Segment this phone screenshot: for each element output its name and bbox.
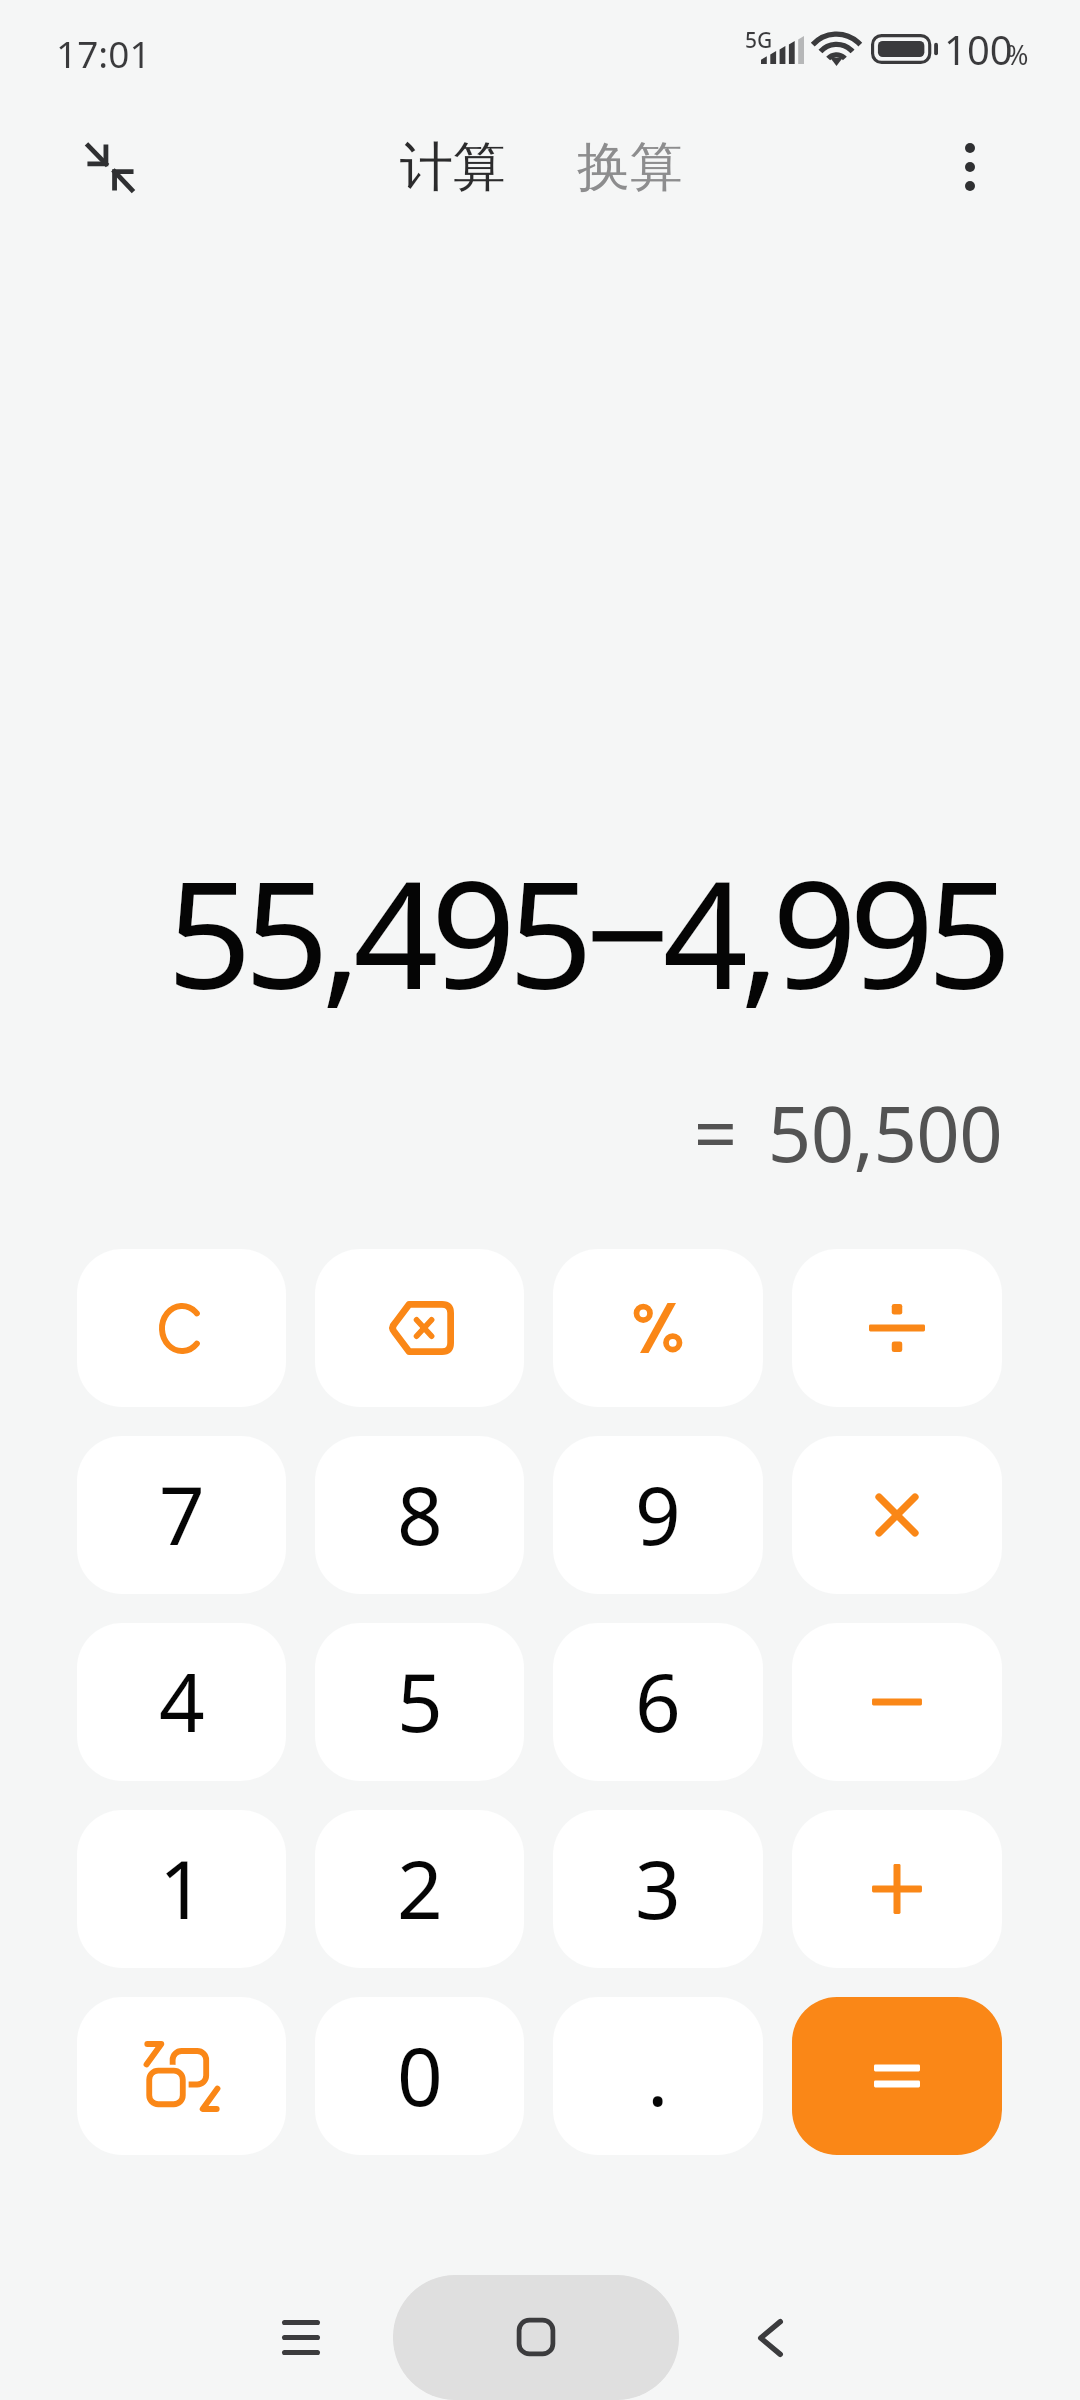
staticText: .	[647, 2020, 669, 2129]
button[interactable]: 0	[315, 1997, 524, 2155]
staticText: 100	[944, 22, 1013, 76]
button[interactable]: Recents	[240, 2275, 361, 2398]
button[interactable]: .	[553, 1997, 763, 2155]
button[interactable]: Divide	[792, 1249, 1002, 1407]
button[interactable]: 3	[553, 1810, 763, 1968]
button[interactable]: 8	[315, 1436, 524, 1594]
staticText: 8	[397, 1459, 443, 1568]
button[interactable]: 4	[77, 1623, 286, 1781]
button[interactable]: Backspace	[315, 1249, 524, 1407]
staticText: 3	[635, 1833, 681, 1942]
staticText: = 50,500	[0, 1081, 1002, 1185]
button[interactable]: 9	[553, 1436, 763, 1594]
staticText: 1	[159, 1833, 205, 1942]
button[interactable]: 5	[315, 1623, 524, 1781]
staticText: %	[1006, 36, 1029, 73]
staticText: 6	[635, 1646, 681, 1755]
button[interactable]: Clear	[77, 1249, 286, 1407]
staticText: 4	[159, 1646, 205, 1755]
button[interactable]: 2	[315, 1810, 524, 1968]
button[interactable]: More options	[904, 119, 1036, 215]
button[interactable]: Percent	[553, 1249, 763, 1407]
button[interactable]: 6	[553, 1623, 763, 1781]
staticText: 17:01	[56, 28, 151, 78]
button[interactable]: 计算	[376, 121, 530, 213]
button[interactable]: Back	[710, 2275, 831, 2398]
button[interactable]: Minus	[792, 1623, 1002, 1781]
button[interactable]: Multiply	[792, 1436, 1002, 1594]
staticText: 换算	[577, 134, 683, 201]
button[interactable]: Collapse	[38, 119, 182, 215]
button[interactable]: Home	[393, 2275, 679, 2400]
staticText: 0	[397, 2020, 443, 2129]
staticText: 55,495−4,995	[0, 830, 1004, 1033]
staticText: 计算	[400, 134, 506, 201]
button[interactable]: Equals	[792, 1997, 1002, 2155]
staticText: 7	[159, 1459, 205, 1568]
button[interactable]: Plus	[792, 1810, 1002, 1968]
button[interactable]: 7	[77, 1436, 286, 1594]
button[interactable]: Unit conversion	[77, 1997, 286, 2155]
staticText: 2	[397, 1833, 443, 1942]
button[interactable]: 换算	[553, 121, 707, 213]
staticText: 9	[635, 1459, 681, 1568]
button[interactable]: 1	[77, 1810, 286, 1968]
staticText: 5	[397, 1646, 443, 1755]
staticText: 5G	[745, 26, 773, 55]
